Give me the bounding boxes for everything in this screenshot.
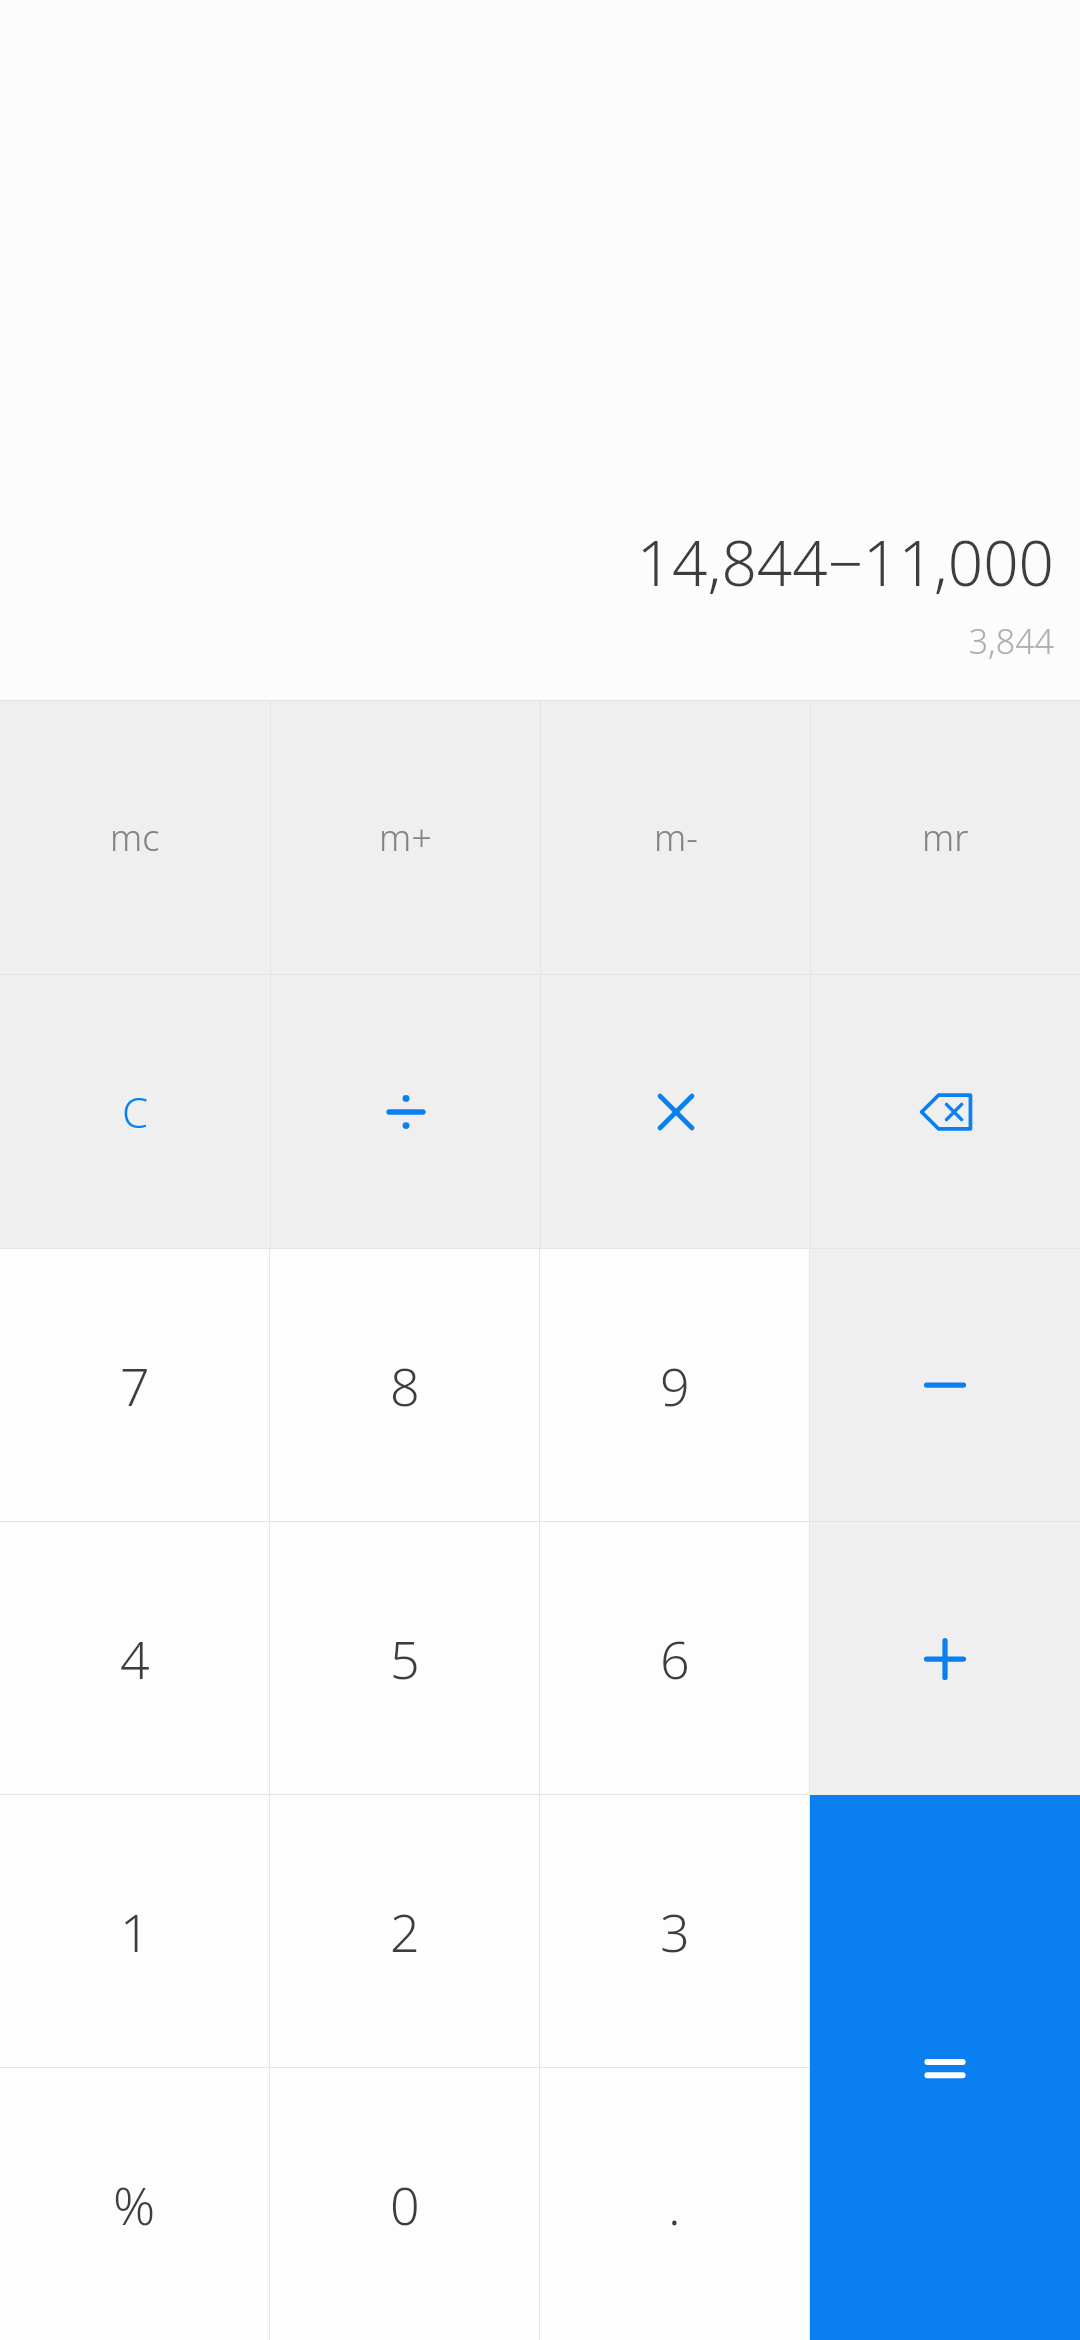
staticText: m- — [654, 813, 698, 862]
staticText: 8 — [390, 1350, 420, 1421]
button[interactable]: Multiply — [541, 975, 810, 1248]
button[interactable]: 5 — [270, 1522, 539, 1794]
button[interactable]: 8 — [270, 1249, 539, 1521]
staticText: 14,844−11,000 — [636, 520, 1054, 604]
staticText: 2 — [390, 1896, 420, 1967]
staticText: C — [122, 1083, 149, 1140]
button[interactable]: C — [0, 975, 270, 1248]
staticText: 7 — [120, 1350, 150, 1421]
staticText: 1 — [120, 1896, 150, 1967]
staticText: mr — [922, 813, 969, 862]
button[interactable]: 6 — [540, 1522, 809, 1794]
staticText: 9 — [660, 1350, 690, 1421]
button[interactable]: 2 — [270, 1795, 539, 2067]
button[interactable]: m- — [541, 701, 810, 974]
staticText: 0 — [390, 2169, 420, 2240]
button[interactable]: 7 — [0, 1249, 269, 1521]
staticText: 3,844 — [968, 618, 1054, 664]
button[interactable]: Plus — [810, 1522, 1080, 1795]
button[interactable]: 4 — [0, 1522, 269, 1794]
staticText: 6 — [660, 1623, 690, 1694]
staticText: 3 — [660, 1896, 690, 1967]
button[interactable]: 1 — [0, 1795, 269, 2067]
staticText: 5 — [390, 1623, 420, 1694]
button[interactable]: 0 — [270, 2068, 539, 2340]
button[interactable]: Equals — [810, 1795, 1080, 2340]
staticText: % — [113, 2169, 156, 2240]
staticText: . — [668, 2169, 681, 2240]
button[interactable]: Minus — [810, 1249, 1080, 1521]
button[interactable]: Divide — [271, 975, 540, 1248]
staticText: mc — [110, 813, 160, 862]
staticText: m+ — [379, 813, 432, 862]
staticText: 4 — [120, 1623, 150, 1694]
button[interactable]: Backspace — [811, 975, 1080, 1248]
button[interactable]: m+ — [271, 701, 540, 974]
button[interactable]: 3 — [540, 1795, 809, 2067]
button[interactable]: mr — [811, 701, 1080, 974]
button[interactable]: mc — [0, 701, 270, 974]
button[interactable]: % — [0, 2068, 269, 2340]
button[interactable]: 9 — [540, 1249, 809, 1521]
